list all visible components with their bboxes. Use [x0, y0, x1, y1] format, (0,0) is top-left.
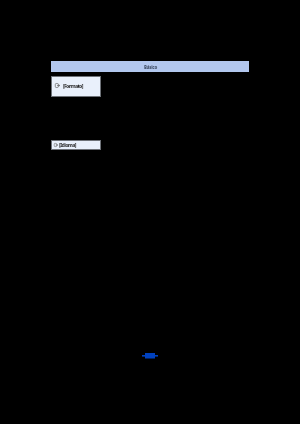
staticText: [Formato]	[63, 82, 83, 89]
staticText: Básico	[144, 64, 157, 70]
button[interactable]: Link	[142, 352, 158, 360]
staticText: [Idioma]	[59, 141, 76, 148]
button[interactable]: [Formato]	[51, 76, 101, 97]
button[interactable]: Básico	[51, 61, 249, 72]
button[interactable]: [Idioma]	[51, 140, 101, 150]
